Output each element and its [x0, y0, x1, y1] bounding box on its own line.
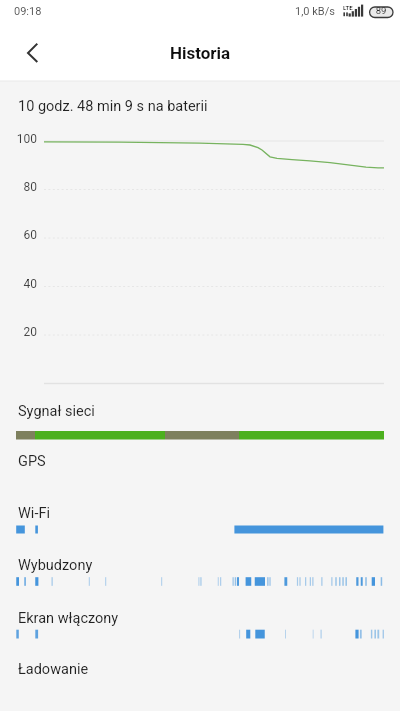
staticText: 09:18: [14, 5, 42, 18]
staticText: Ekran włączony: [18, 610, 119, 627]
staticText: 100: [0, 132, 37, 146]
button[interactable]: Back: [10, 31, 54, 75]
staticText: Ładowanie: [18, 661, 89, 678]
staticText: LTE: [343, 4, 353, 11]
staticText: Wybudzony: [18, 557, 93, 574]
staticText: 1,0 kB/s: [295, 5, 335, 18]
staticText: 40: [0, 277, 37, 291]
staticText: 89: [369, 5, 393, 16]
staticText: 60: [0, 228, 37, 242]
staticText: 20: [0, 325, 37, 339]
staticText: 80: [0, 180, 37, 194]
staticText: Sygnał sieci: [18, 403, 95, 420]
staticText: Historia: [0, 43, 400, 63]
staticText: 10 godz. 48 min 9 s na baterii: [18, 98, 208, 115]
staticText: Wi-Fi: [18, 505, 50, 522]
staticText: GPS: [18, 453, 46, 470]
